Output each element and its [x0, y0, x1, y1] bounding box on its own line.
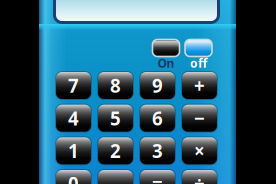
staticText: 6 — [152, 106, 163, 131]
button[interactable]: On — [150, 38, 181, 69]
button[interactable]: 4 — [54, 103, 93, 134]
staticText: 8 — [110, 73, 121, 98]
button[interactable]: × — [180, 135, 219, 166]
staticText: 1 — [68, 138, 79, 163]
staticText: = — [152, 171, 163, 184]
button[interactable]: 8 — [96, 70, 135, 101]
staticText: 7 — [68, 73, 79, 98]
button[interactable]: 3 — [138, 135, 177, 166]
button[interactable]: 7 — [54, 70, 93, 101]
button[interactable]: = — [138, 168, 177, 184]
button[interactable]: ÷ — [180, 168, 219, 184]
button[interactable]: − — [180, 103, 219, 134]
staticText: × — [194, 138, 205, 163]
staticText: 9 — [152, 73, 163, 98]
staticText: 5 — [110, 106, 121, 131]
staticText: 4 — [68, 106, 79, 131]
button[interactable]: 5 — [96, 103, 135, 134]
staticText: ÷ — [194, 171, 205, 184]
staticText: − — [194, 106, 205, 131]
staticText: + — [194, 73, 205, 98]
button[interactable]: 6 — [138, 103, 177, 134]
staticText: 3 — [152, 138, 163, 163]
staticText: 2 — [110, 138, 121, 163]
button[interactable]: 1 — [54, 135, 93, 166]
button[interactable]: off — [183, 38, 214, 69]
button[interactable]: 9 — [138, 70, 177, 101]
button[interactable]: . — [96, 168, 135, 184]
button[interactable]: 0 — [54, 168, 93, 184]
staticText: 0 — [68, 171, 79, 184]
staticText: On — [157, 55, 174, 71]
button[interactable]: + — [180, 70, 219, 101]
staticText: off — [190, 55, 207, 71]
button[interactable]: 2 — [96, 135, 135, 166]
staticText: . — [113, 171, 118, 184]
